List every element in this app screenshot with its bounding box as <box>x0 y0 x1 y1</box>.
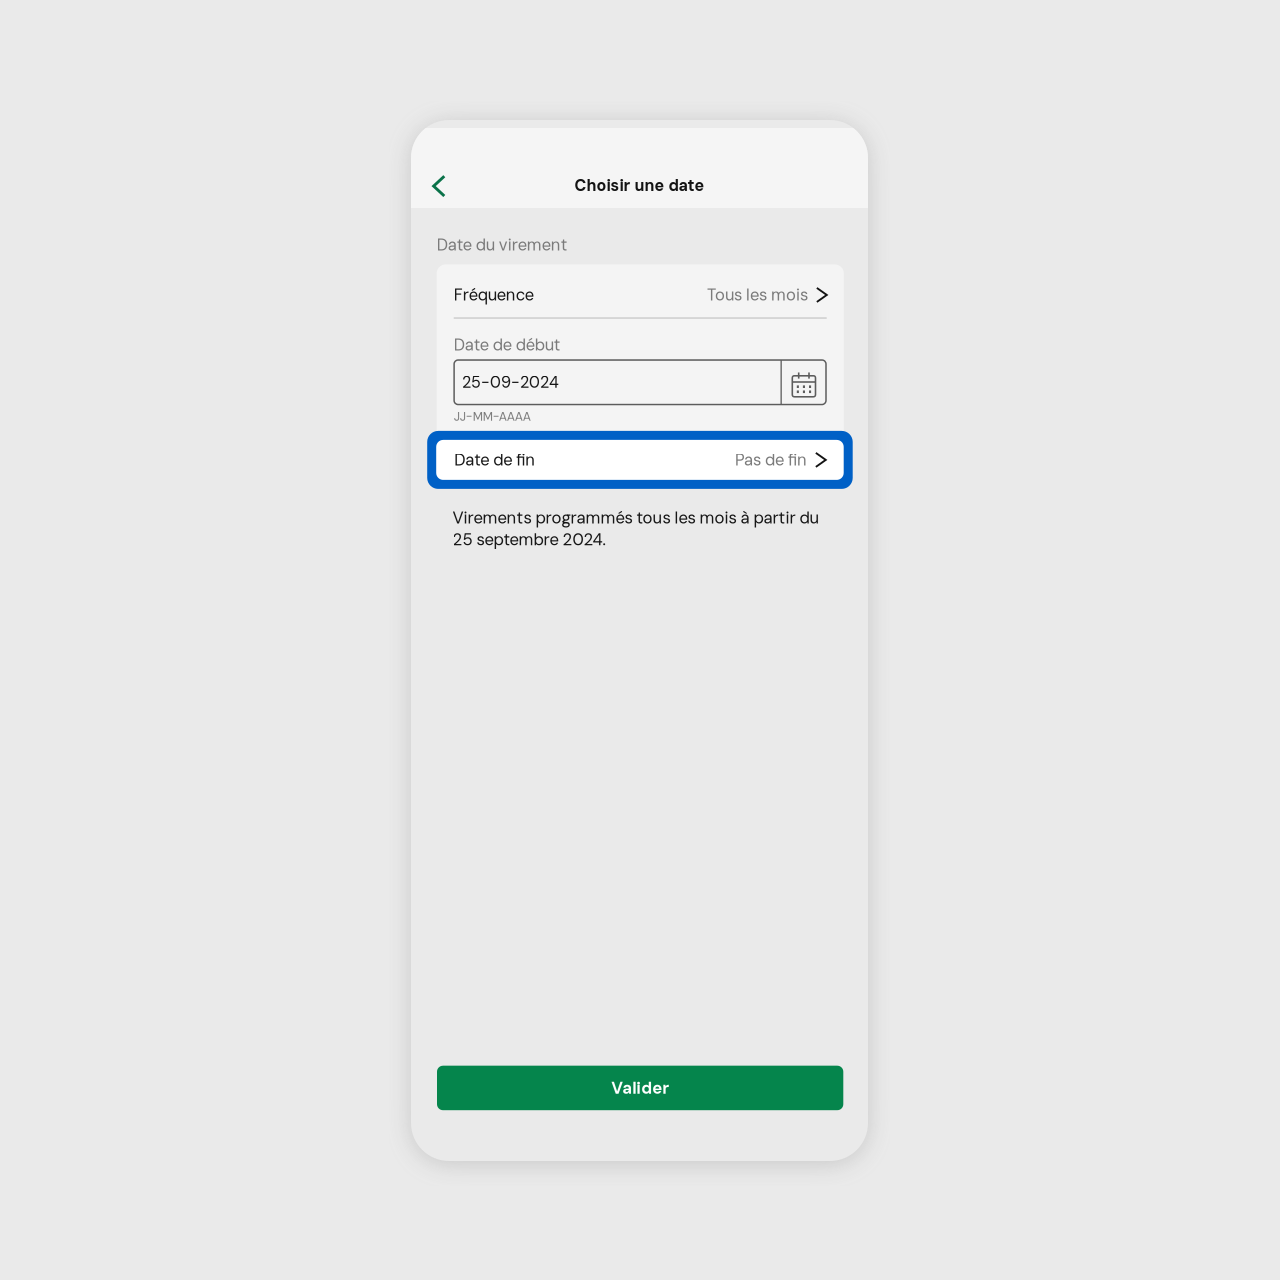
staticText: Choisir une date <box>574 175 704 196</box>
staticText: JJ-MM-AAAA <box>454 408 531 425</box>
button[interactable]: Valider <box>437 1066 843 1110</box>
staticText: 25-09-2024 <box>462 372 559 393</box>
staticText: Valider <box>611 1077 669 1099</box>
staticText: Date du virement <box>437 234 568 255</box>
staticText: Fréquence <box>454 284 534 306</box>
staticText: Date de début <box>454 334 561 355</box>
staticText: Tous les mois <box>707 284 808 306</box>
staticText: Date de fin <box>454 449 535 471</box>
button[interactable]: Ouvrir le calendrier <box>782 360 826 404</box>
button[interactable]: Date de fin <box>427 431 853 489</box>
button[interactable]: Retour <box>417 164 461 208</box>
staticText: Virements programmés tous les mois à par… <box>452 507 819 550</box>
staticText: Pas de fin <box>735 449 807 471</box>
button[interactable]: Fréquence <box>437 264 840 317</box>
